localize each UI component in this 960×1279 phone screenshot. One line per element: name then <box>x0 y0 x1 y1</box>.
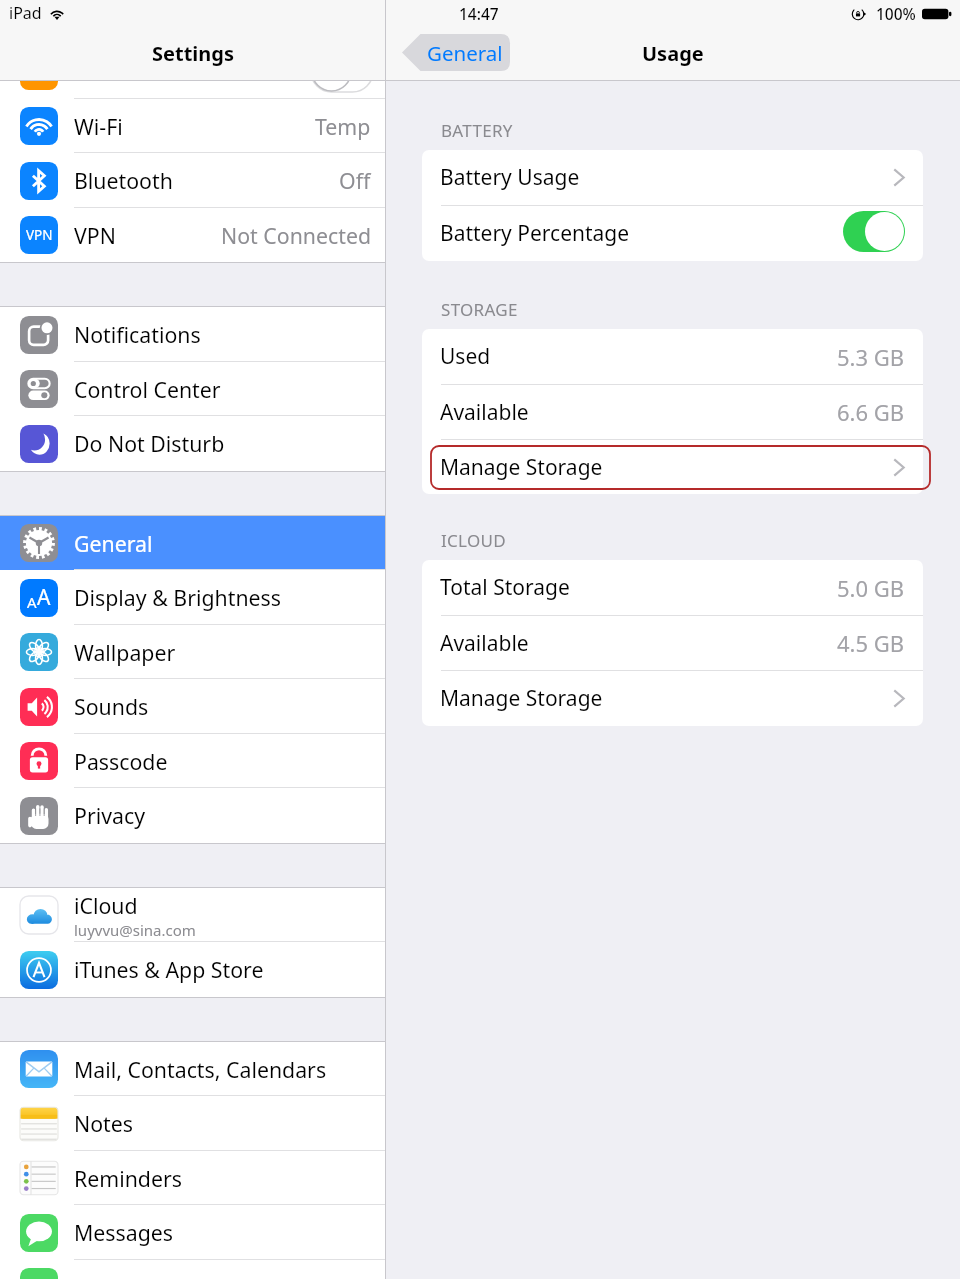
staticText: Not Connected <box>221 221 371 250</box>
staticText: Display & Brightness <box>74 583 281 612</box>
button[interactable]: Battery Percentage toggle <box>843 211 905 252</box>
button[interactable]: Battery Usage <box>422 150 923 205</box>
staticText: Do Not Disturb <box>74 429 225 458</box>
button[interactable]: A <box>0 570 385 625</box>
staticText: General <box>74 529 153 558</box>
staticText: Privacy <box>74 801 146 830</box>
button[interactable]: Messages <box>0 1205 385 1260</box>
button[interactable]: Control Center <box>0 362 385 416</box>
staticText: General <box>427 39 503 67</box>
button[interactable]: Wallpaper <box>0 625 385 679</box>
staticText: ICLOUD <box>441 529 506 552</box>
button[interactable]: Available <box>422 616 923 670</box>
staticText: Settings <box>152 40 234 67</box>
button[interactable]: Passcode <box>0 734 385 788</box>
staticText: Wi-Fi <box>74 112 123 141</box>
staticText: Manage Storage <box>440 453 603 482</box>
staticText: iTunes & App Store <box>74 955 264 984</box>
staticText: Sounds <box>74 692 149 721</box>
staticText: Usage <box>642 40 704 67</box>
staticText: Manage Storage <box>440 684 603 713</box>
staticText: 4.5 GB <box>837 628 905 658</box>
button[interactable]: Total Storage <box>422 560 923 615</box>
button[interactable]: Wi-Fi <box>0 99 385 153</box>
button[interactable]: Manage Storage <box>422 671 923 726</box>
staticText: iPad <box>9 2 42 24</box>
button[interactable]: General <box>0 516 385 570</box>
staticText: Available <box>440 629 529 658</box>
button[interactable]: Reminders <box>0 1151 385 1205</box>
staticText: Battery Percentage <box>440 219 630 248</box>
staticText: STORAGE <box>441 298 518 321</box>
staticText: Notes <box>74 1109 133 1138</box>
button[interactable]: Privacy <box>0 788 385 843</box>
staticText: BATTERY <box>441 119 513 142</box>
staticText: 14:47 <box>459 3 499 24</box>
button[interactable]: Do Not Disturb <box>0 416 385 471</box>
staticText: 5.3 GB <box>837 342 905 372</box>
staticText: Wallpaper <box>74 638 176 667</box>
staticText: Used <box>440 342 491 371</box>
staticText: VPN <box>74 221 116 250</box>
staticText: Messages <box>74 1218 173 1247</box>
staticText: Off <box>339 166 371 195</box>
button[interactable]: Notifications <box>0 307 385 362</box>
staticText: A <box>27 592 37 612</box>
staticText: Control Center <box>74 375 221 404</box>
button[interactable]: iCloud <box>0 888 385 942</box>
staticText: Available <box>440 398 529 427</box>
staticText: 100% <box>876 3 916 24</box>
button[interactable]: Sounds <box>0 679 385 734</box>
button[interactable]: Battery Percentage <box>422 206 923 261</box>
button[interactable]: iTunes & App Store <box>0 942 385 997</box>
button[interactable]: Used <box>422 329 923 384</box>
staticText: Bluetooth <box>74 166 173 195</box>
button[interactable]: Notes <box>0 1096 385 1151</box>
staticText: VPN <box>26 226 53 244</box>
staticText: 5.0 GB <box>837 573 905 603</box>
staticText: 6.6 GB <box>837 397 905 427</box>
staticText: Passcode <box>74 747 168 776</box>
staticText: iCloud <box>74 891 138 920</box>
staticText: Battery Usage <box>440 163 580 192</box>
staticText: A <box>37 583 51 612</box>
button[interactable]: General <box>402 34 510 71</box>
button[interactable]: Bluetooth <box>0 153 385 208</box>
button[interactable]: VPN <box>0 208 385 262</box>
button[interactable]: Manage Storage <box>422 440 923 494</box>
button[interactable]: Available <box>422 385 923 439</box>
button[interactable]: Mail, Contacts, Calendars <box>0 1042 385 1096</box>
staticText: Mail, Contacts, Calendars <box>74 1055 327 1084</box>
staticText: Reminders <box>74 1164 182 1193</box>
staticText: Total Storage <box>440 573 570 602</box>
staticText: luyvvu@sina.com <box>74 920 196 940</box>
staticText: Notifications <box>74 320 201 349</box>
staticText: Temp <box>315 112 371 141</box>
